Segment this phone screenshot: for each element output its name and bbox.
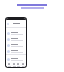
button[interactable] <box>6 36 26 42</box>
button[interactable]: Tab 3 <box>21 63 25 67</box>
button[interactable]: Tab 0 <box>7 63 11 67</box>
button[interactable] <box>6 56 26 62</box>
button[interactable] <box>6 30 26 36</box>
button[interactable]: Tab 1 <box>12 63 16 67</box>
button[interactable] <box>6 42 26 48</box>
button[interactable]: Tab 2 <box>16 63 20 67</box>
button[interactable] <box>6 48 26 54</box>
